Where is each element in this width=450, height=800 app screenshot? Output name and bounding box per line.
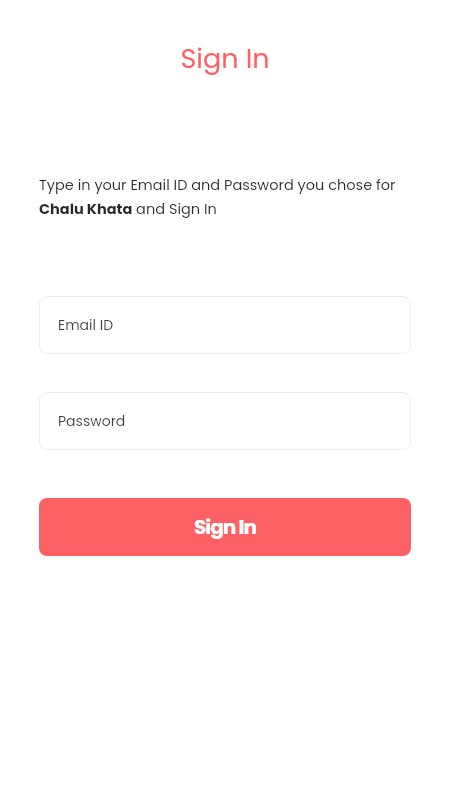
- staticText: Sign In: [194, 513, 256, 541]
- button[interactable]: Password: [39, 392, 411, 450]
- staticText: Sign In: [0, 40, 450, 78]
- staticText: Password: [58, 411, 126, 431]
- staticText: Email ID: [58, 315, 114, 335]
- staticText: Type in your Email ID and Password you c…: [39, 175, 411, 219]
- button[interactable]: Email ID: [39, 296, 411, 354]
- button[interactable]: Sign In: [39, 498, 411, 556]
